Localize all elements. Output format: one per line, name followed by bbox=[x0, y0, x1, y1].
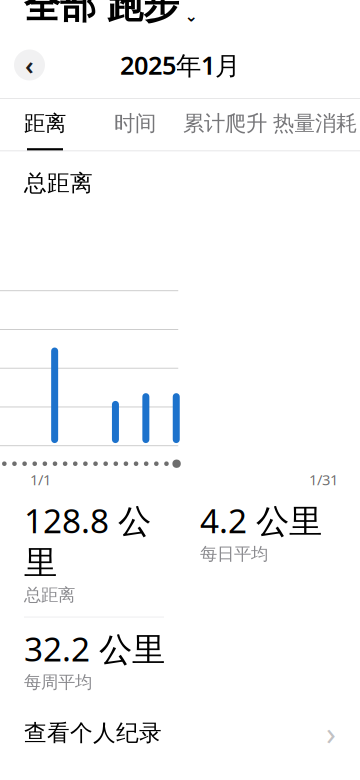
staticText: ⌄ bbox=[184, 7, 197, 25]
staticText: 热量消耗 bbox=[273, 110, 357, 136]
button[interactable]: 累计爬升 bbox=[180, 99, 270, 151]
button[interactable]: 全部 跑步 bbox=[24, 0, 197, 28]
staticText: 128.8 公里 bbox=[24, 498, 151, 583]
staticText: 总距离 bbox=[24, 584, 75, 606]
button[interactable]: 热量消耗 bbox=[270, 99, 360, 151]
staticText: › bbox=[326, 712, 336, 754]
staticText: ‹ bbox=[25, 48, 34, 82]
staticText: 2025年1月 bbox=[120, 48, 240, 82]
button[interactable]: 上一个月 bbox=[14, 49, 45, 80]
staticText: 1/31 bbox=[309, 470, 338, 489]
staticText: 1/1 bbox=[30, 470, 51, 489]
staticText: 累计爬升 bbox=[183, 110, 267, 136]
button[interactable]: 查看个人纪录 bbox=[0, 704, 360, 762]
staticText: 32.2 公里 bbox=[24, 626, 165, 671]
staticText: 全部 跑步 bbox=[24, 0, 179, 28]
button[interactable]: 距离 bbox=[0, 99, 90, 151]
staticText: 距离 bbox=[24, 110, 66, 136]
staticText: 时间 bbox=[114, 110, 156, 136]
staticText: 每日平均 bbox=[200, 543, 268, 565]
staticText: 查看个人纪录 bbox=[24, 719, 162, 747]
staticText: 4.2 公里 bbox=[200, 498, 322, 542]
staticText: 每周平均 bbox=[24, 672, 92, 693]
button[interactable]: 时间 bbox=[90, 99, 180, 151]
staticText: 总距离 bbox=[24, 169, 93, 197]
